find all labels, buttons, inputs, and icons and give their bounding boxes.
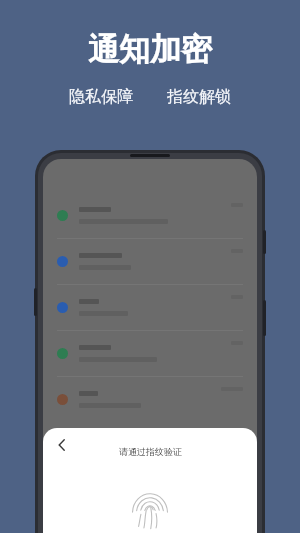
button[interactable]	[43, 331, 257, 376]
button[interactable]: Back	[49, 432, 75, 458]
button[interactable]	[43, 239, 257, 284]
staticText: 指纹解锁	[167, 87, 231, 107]
staticText: 请通过指纹验证	[119, 446, 182, 457]
staticText: 隐私保障	[69, 87, 133, 107]
button[interactable]	[43, 377, 257, 422]
button[interactable]: Fingerprint authenticate	[131, 493, 169, 531]
button[interactable]	[43, 193, 257, 238]
button[interactable]	[43, 285, 257, 330]
staticText: 通知加密	[88, 30, 212, 69]
